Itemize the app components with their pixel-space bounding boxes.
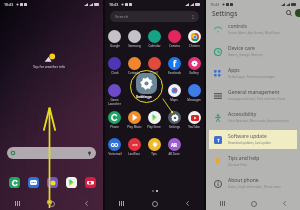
button[interactable]: Phone bbox=[105, 111, 124, 138]
button[interactable]: Search bbox=[284, 8, 294, 18]
staticText: Settings bbox=[136, 94, 152, 99]
button[interactable]: Accessibility bbox=[213, 106, 293, 128]
button[interactable] bbox=[144, 84, 164, 111]
button[interactable]: Recents bbox=[0, 197, 35, 210]
button[interactable]: Back bbox=[269, 197, 300, 210]
button[interactable]: Contacts bbox=[124, 57, 144, 84]
button[interactable]: Home bbox=[238, 197, 269, 210]
staticText: 10:43 bbox=[4, 2, 14, 7]
button[interactable]: General management bbox=[213, 84, 293, 106]
button[interactable]: Weather bbox=[33, 53, 66, 69]
button[interactable]: Search bbox=[110, 11, 199, 22]
button[interactable]: controls bbox=[213, 18, 293, 40]
button[interactable]: Camera bbox=[85, 177, 96, 188]
staticText: Download updates, Last update bbox=[228, 141, 272, 145]
staticText: Settings bbox=[212, 9, 238, 18]
button[interactable]: Maps bbox=[164, 84, 184, 111]
button[interactable]: Software update bbox=[213, 128, 293, 150]
button[interactable]: Chrome bbox=[184, 30, 204, 57]
button[interactable]: Tips bbox=[144, 138, 164, 165]
button[interactable]: Recents bbox=[105, 197, 138, 210]
button[interactable]: AR bbox=[164, 138, 184, 165]
button[interactable]: Recents bbox=[206, 197, 238, 210]
button[interactable]: Phone bbox=[9, 177, 20, 188]
button[interactable]: Calendar bbox=[144, 30, 164, 57]
staticText: Default apps, Permission manager bbox=[228, 75, 275, 79]
staticText: Accessibility bbox=[228, 111, 257, 118]
button[interactable]: Email bbox=[144, 57, 164, 84]
button[interactable]: Search bbox=[7, 147, 96, 159]
staticText: 10:43 bbox=[210, 2, 220, 7]
button[interactable]: Settings bbox=[164, 111, 184, 138]
staticText: Tap for weather info bbox=[33, 64, 66, 69]
button[interactable]: Apps bbox=[213, 62, 293, 84]
staticText: YouTube bbox=[188, 125, 200, 129]
staticText: Email bbox=[150, 71, 158, 75]
button[interactable]: Messages bbox=[28, 177, 39, 188]
staticText: controls bbox=[228, 23, 247, 30]
staticText: General management bbox=[228, 89, 280, 96]
button[interactable]: Play Music bbox=[124, 111, 144, 138]
button[interactable]: Tips and help bbox=[213, 150, 293, 172]
staticText: Apps bbox=[228, 67, 240, 74]
button[interactable]: Play Store bbox=[144, 111, 164, 138]
staticText: Discover Help bbox=[228, 163, 247, 167]
staticText: AR Zone bbox=[168, 152, 180, 156]
button[interactable]: Gallery bbox=[184, 57, 204, 84]
staticText: About phone bbox=[228, 177, 259, 184]
staticText: Clock bbox=[111, 71, 119, 75]
staticText: Screen Alarm, App Shared, Wind Sever bbox=[228, 31, 280, 35]
staticText: Device care bbox=[228, 45, 255, 52]
button[interactable]: Settings bbox=[136, 73, 157, 94]
button[interactable]: About phone bbox=[213, 172, 293, 194]
button[interactable]: Back bbox=[69, 197, 103, 210]
staticText: Play Store bbox=[147, 125, 161, 129]
staticText: Facebook bbox=[168, 71, 181, 75]
staticText: Search bbox=[115, 14, 129, 20]
staticText: Samsung bbox=[128, 44, 141, 48]
button[interactable]: Home bbox=[35, 197, 69, 210]
staticText: Tips and help bbox=[228, 155, 260, 162]
staticText: Battery, Storage, Memory bbox=[228, 53, 263, 57]
staticText: Software update bbox=[228, 133, 267, 140]
button[interactable] bbox=[124, 84, 144, 111]
staticText: Voice Assistant, Mono audio, Assistant m… bbox=[228, 119, 289, 123]
staticText: Settings bbox=[169, 125, 180, 129]
button[interactable]: Clock bbox=[105, 57, 124, 84]
button[interactable]: Voicemail bbox=[105, 138, 124, 165]
staticText: Google bbox=[110, 44, 120, 48]
staticText: Contacts bbox=[128, 71, 140, 75]
button[interactable]: Contacts bbox=[47, 177, 58, 188]
staticText: Camera bbox=[169, 44, 180, 48]
staticText: Status, Legal information, Phone name bbox=[228, 185, 281, 189]
button[interactable]: Back bbox=[171, 197, 204, 210]
button[interactable]: Google bbox=[105, 30, 124, 57]
staticText: Language and input, Date and time, Reset bbox=[228, 97, 286, 101]
staticText: LastPass bbox=[128, 152, 140, 156]
staticText: Game Launcher bbox=[108, 98, 121, 106]
staticText: Messages bbox=[187, 98, 201, 102]
staticText: f bbox=[173, 58, 177, 69]
button[interactable]: Messages bbox=[184, 84, 204, 111]
button[interactable]: Account bbox=[295, 9, 300, 17]
button[interactable]: LastPass bbox=[124, 138, 144, 165]
staticText: Calendar bbox=[148, 44, 161, 48]
button[interactable]: Play Store bbox=[66, 177, 77, 188]
button[interactable]: Home bbox=[138, 197, 171, 210]
button[interactable]: Device care bbox=[213, 40, 293, 62]
button[interactable]: Camera bbox=[164, 30, 184, 57]
staticText: Chrome bbox=[189, 44, 200, 48]
staticText: AR bbox=[171, 142, 178, 148]
button[interactable]: YouTube bbox=[184, 111, 204, 138]
staticText: Phone bbox=[110, 125, 119, 129]
button[interactable]: Game Launcher bbox=[105, 84, 124, 111]
staticText: Voicemail bbox=[108, 152, 122, 156]
staticText: Play Music bbox=[127, 125, 142, 129]
button[interactable]: f bbox=[164, 57, 184, 84]
staticText: Maps bbox=[170, 98, 178, 102]
staticText: Gallery bbox=[189, 71, 199, 75]
button[interactable]: Samsung bbox=[124, 30, 144, 57]
staticText: Tips bbox=[151, 152, 157, 156]
staticText: 10:43 bbox=[109, 2, 119, 7]
